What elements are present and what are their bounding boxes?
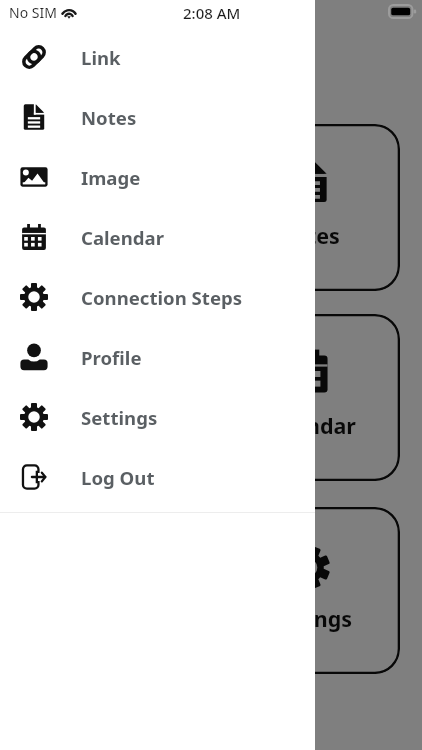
staticText: Settings (264, 604, 353, 633)
staticText: Link (81, 45, 121, 70)
button[interactable]: Log Out (0, 447, 315, 507)
staticText: Connection Steps (81, 285, 243, 310)
staticText: Log Out (81, 465, 155, 490)
button[interactable]: Image (0, 147, 315, 207)
staticText: Calendar (81, 225, 165, 250)
staticText: 2:08 AM (183, 3, 241, 23)
button[interactable]: Image (26, 314, 210, 481)
button[interactable]: Link (26, 124, 210, 291)
staticText: No SIM (9, 3, 57, 22)
button[interactable]: Connection Steps (0, 267, 315, 327)
staticText: Image (84, 411, 153, 440)
button[interactable]: Calendar (216, 314, 400, 481)
staticText: Image (81, 165, 141, 190)
button[interactable]: Calendar (0, 207, 315, 267)
button[interactable]: Notes (216, 124, 400, 291)
staticText: Calendar (260, 411, 356, 440)
button[interactable]: Settings (216, 507, 400, 674)
staticText: Profile (81, 345, 142, 370)
staticText: Notes (81, 105, 137, 130)
button[interactable]: Profile (0, 327, 315, 387)
staticText: Notes (276, 221, 340, 250)
staticText: Settings (81, 405, 158, 430)
button[interactable]: Settings (0, 387, 315, 447)
button[interactable]: Link (0, 27, 315, 87)
staticText: Link (95, 221, 141, 250)
button[interactable]: Notes (0, 87, 315, 147)
